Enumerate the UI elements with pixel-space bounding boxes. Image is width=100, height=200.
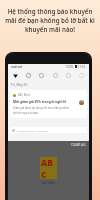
staticText: CLEAR ALL xyxy=(71,143,86,147)
staticText: Fri, May 26 xyxy=(11,83,28,87)
button[interactable]: Quick setting 2 xyxy=(37,71,46,80)
staticText: ABC xyxy=(41,157,56,179)
staticText: 11:16 xyxy=(78,65,86,69)
button[interactable]: Quick setting 1 xyxy=(24,71,33,80)
staticText: Giảm giá được áp dụng khi mua hàng onlin… xyxy=(13,106,70,114)
staticText: Android System · Charging xyxy=(17,129,49,132)
staticText: ABC Mart xyxy=(18,93,30,97)
button[interactable]: Quick setting 0 xyxy=(11,71,20,80)
button[interactable]: Quick setting 5 xyxy=(77,71,86,80)
staticText: ABC Mart xyxy=(42,181,56,185)
staticText: Hệ thống thông báo khuyến mãi để bạn khô… xyxy=(5,7,95,34)
button[interactable]: Quick setting 3 xyxy=(51,71,60,80)
staticText: android xyxy=(11,65,23,69)
staticText: Mới giảm giá 25% trong kì nghỉ lễ xyxy=(13,100,67,104)
button[interactable]: ABC Mart logo xyxy=(40,157,57,179)
staticText: 100% xyxy=(66,65,74,69)
button[interactable]: Quick setting 4 xyxy=(64,71,73,80)
button[interactable]: CLEAR ALL xyxy=(71,141,89,147)
button[interactable]: ABC Mart xyxy=(10,90,87,118)
button[interactable]: Android System · Charging xyxy=(10,127,87,133)
